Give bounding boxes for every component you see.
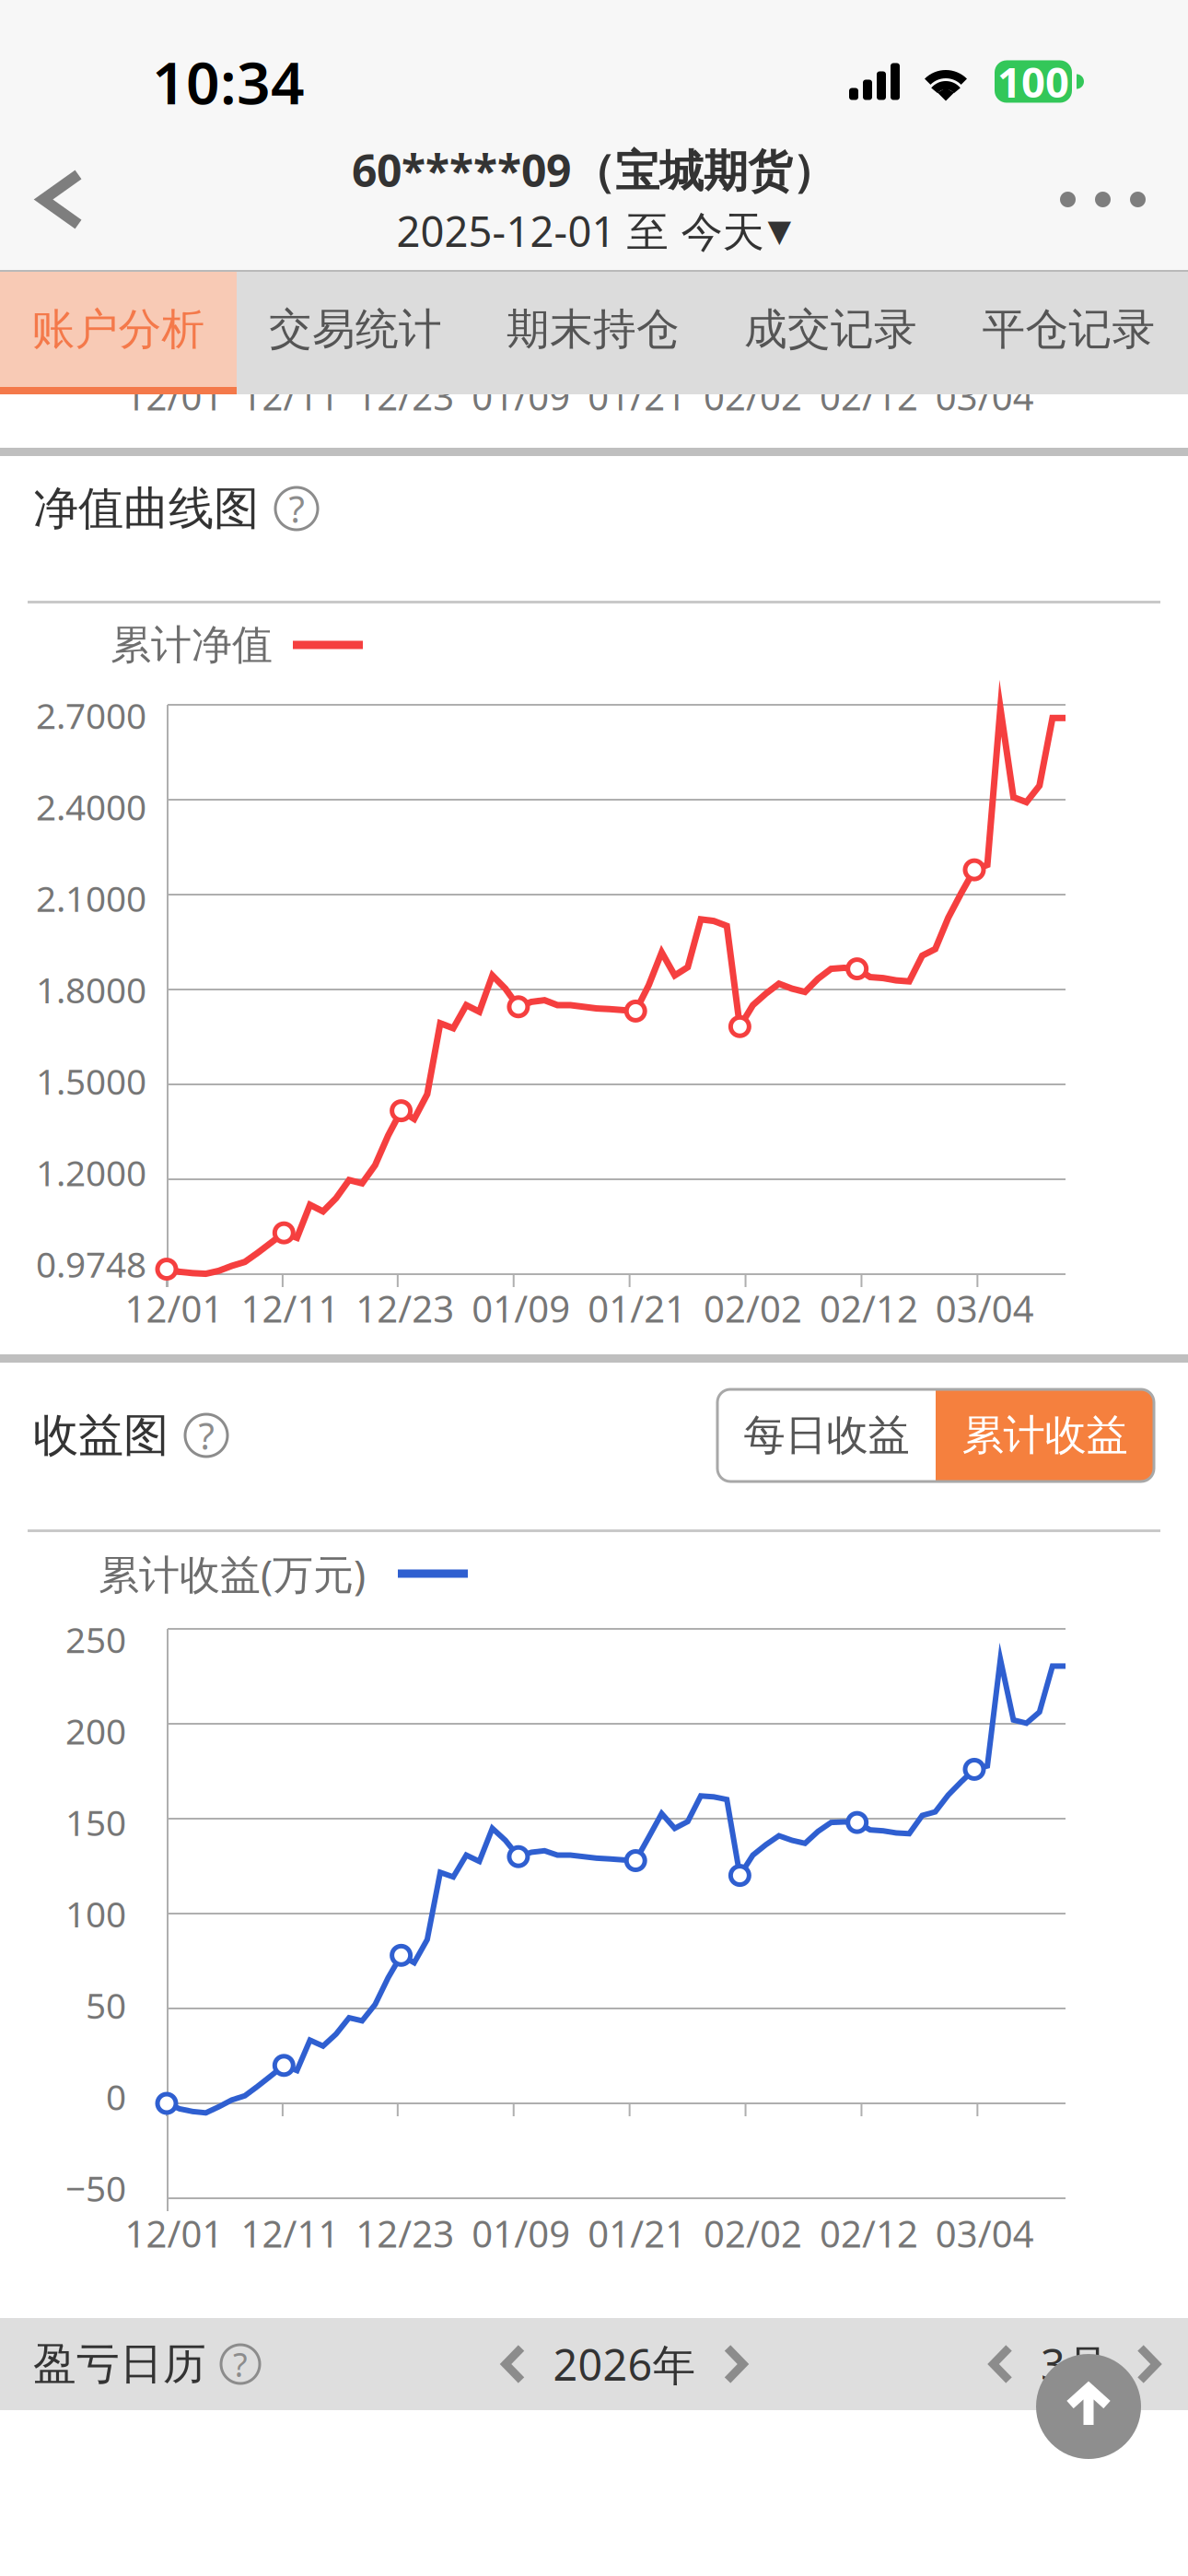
staticText: 02/02 — [704, 372, 802, 421]
staticText: 250 — [65, 1616, 126, 1663]
staticText: 2.1000 — [36, 874, 146, 922]
staticText: ? — [198, 1411, 214, 1460]
staticText: 2.7000 — [36, 691, 146, 739]
staticText: 03/04 — [936, 2209, 1034, 2258]
staticText: 01/21 — [588, 2209, 686, 2258]
staticText: 50 — [86, 1981, 126, 2029]
button[interactable]: 成交记录 — [712, 272, 949, 394]
staticText: 03/04 — [936, 372, 1034, 421]
staticText: 01/09 — [472, 372, 570, 421]
button[interactable]: Back — [0, 129, 122, 270]
staticText: 平仓记录 — [982, 303, 1155, 356]
staticText: 1.8000 — [36, 966, 146, 1013]
button[interactable]: 每日收益 — [717, 1389, 936, 1481]
staticText: 12/01 — [125, 1284, 223, 1333]
staticText: 12/11 — [241, 2209, 339, 2258]
staticText: 01/21 — [588, 372, 686, 421]
staticText: 100 — [997, 54, 1069, 109]
staticText: 1.5000 — [36, 1057, 146, 1105]
staticText: 03/04 — [936, 1284, 1034, 1333]
button[interactable]: Previous year — [501, 2344, 525, 2384]
staticText: 交易统计 — [269, 303, 442, 356]
staticText: 累计收益(万元) — [99, 1547, 366, 1601]
staticText: 1.2000 — [36, 1149, 146, 1196]
staticText: 12/11 — [241, 372, 339, 421]
staticText: 01/21 — [588, 1284, 686, 1333]
button[interactable]: 账户分析 — [0, 272, 237, 394]
staticText: 0 — [106, 2073, 126, 2120]
button[interactable]: More options — [1018, 129, 1188, 270]
button[interactable]: Previous month — [989, 2344, 1013, 2384]
staticText: 12/23 — [356, 2209, 454, 2258]
staticText: 盈亏日历 — [33, 2338, 206, 2390]
staticText: 账户分析 — [32, 303, 205, 356]
staticText: −50 — [65, 2164, 126, 2212]
staticText: 0.9748 — [36, 1240, 146, 1288]
staticText: 12/01 — [125, 2209, 223, 2258]
staticText: 每日收益 — [744, 1410, 909, 1461]
button[interactable]: Next year — [723, 2344, 747, 2384]
staticText: 02/02 — [704, 2209, 802, 2258]
staticText: 150 — [65, 1799, 126, 1846]
button[interactable]: What is this — [221, 2345, 260, 2383]
button[interactable]: What is this — [275, 487, 318, 530]
staticText: ? — [289, 484, 304, 533]
staticText: 02/12 — [820, 372, 918, 421]
button[interactable]: 平仓记录 — [949, 272, 1188, 394]
staticText: 12/23 — [356, 1284, 454, 1333]
staticText: 02/12 — [820, 2209, 918, 2258]
staticText: 收益图 — [33, 1407, 169, 1463]
staticText: 3月 — [1041, 2336, 1109, 2393]
staticText: 01/09 — [472, 2209, 570, 2258]
button[interactable]: 2025-12-01 至 今天 — [396, 203, 792, 258]
button[interactable]: 交易统计 — [237, 272, 474, 394]
staticText: 期末持仓 — [507, 303, 680, 356]
staticText: 2.4000 — [36, 783, 146, 830]
staticText: 02/12 — [820, 1284, 918, 1333]
staticText: 02/02 — [704, 1284, 802, 1333]
staticText: 12/01 — [125, 372, 223, 421]
staticText: ? — [233, 2342, 248, 2386]
button[interactable]: Next month — [1136, 2344, 1160, 2384]
staticText: 成交记录 — [744, 303, 917, 356]
staticText: 12/23 — [356, 372, 454, 421]
staticText: 12/11 — [241, 1284, 339, 1333]
staticText: 2025-12-01 至 今天 — [396, 203, 764, 258]
button[interactable]: Scroll to top — [1036, 2354, 1141, 2459]
staticText: 60*****09（宝城期货） — [352, 141, 836, 199]
staticText: 净值曲线图 — [33, 481, 259, 536]
staticText: 200 — [65, 1707, 126, 1754]
staticText: 01/09 — [472, 1284, 570, 1333]
button[interactable]: What is this — [185, 1414, 227, 1457]
staticText: ▼ — [768, 213, 792, 248]
staticText: 2026年 — [553, 2336, 696, 2393]
button[interactable]: 累计收益 — [936, 1389, 1154, 1481]
button[interactable]: 期末持仓 — [474, 272, 712, 394]
staticText: 累计净值 — [111, 620, 273, 670]
staticText: 100 — [65, 1890, 126, 1937]
staticText: 累计收益 — [962, 1410, 1128, 1461]
staticText: 10:34 — [152, 42, 305, 121]
